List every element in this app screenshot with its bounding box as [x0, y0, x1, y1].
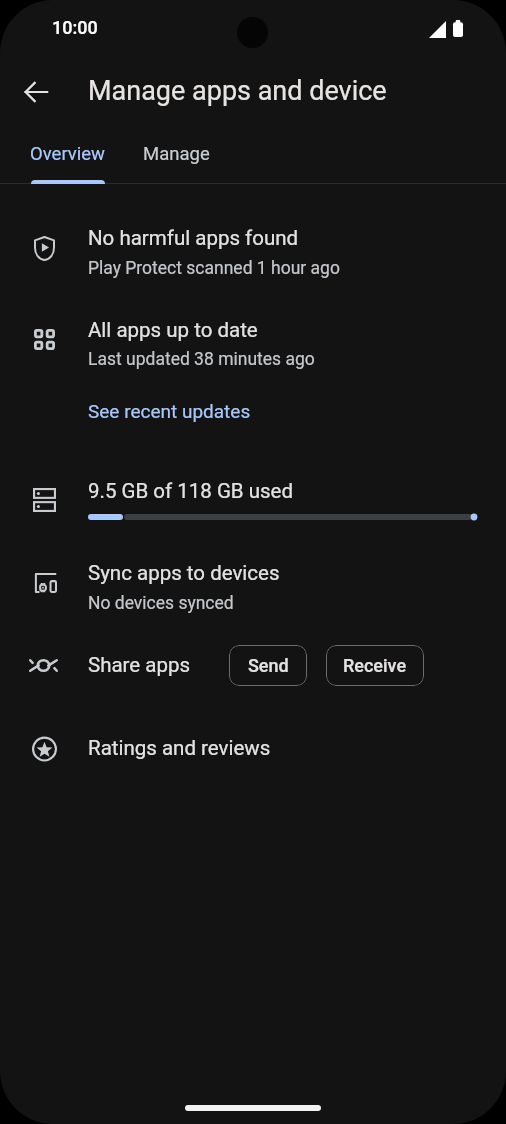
staticText: Manage apps and device [88, 75, 387, 107]
button[interactable]: 9.5 GB of 118 GB used [0, 465, 506, 531]
staticText: Sync apps to devices [88, 561, 280, 585]
staticText: Send [248, 655, 289, 676]
staticText: No harmful apps found [88, 226, 299, 250]
staticText: Ratings and reviews [88, 736, 271, 760]
staticText: See recent updates [88, 400, 251, 422]
button[interactable]: Receive [326, 645, 424, 686]
button[interactable]: Sync apps to devices [0, 551, 506, 615]
button[interactable]: No harmful apps found [0, 216, 506, 280]
staticText: Last updated 38 minutes ago [88, 349, 315, 370]
staticText: No devices synced [88, 593, 234, 614]
staticText: All apps up to date [88, 318, 258, 342]
button[interactable]: Overview [12, 128, 123, 183]
staticText: Receive [343, 655, 407, 676]
staticText: 9.5 GB of 118 GB used [88, 479, 294, 503]
staticText: Overview [30, 143, 105, 165]
staticText: Manage [143, 143, 210, 165]
button[interactable]: Share apps [0, 633, 215, 697]
button[interactable]: All apps up to date [0, 308, 506, 372]
button[interactable]: See recent updates [80, 396, 259, 426]
staticText: Share apps [88, 653, 191, 677]
button[interactable]: Send [229, 645, 307, 686]
staticText: Play Protect scanned 1 hour ago [88, 258, 340, 279]
button[interactable]: Back [12, 68, 60, 116]
button[interactable]: Manage [123, 128, 230, 183]
staticText: 10:00 [52, 17, 98, 38]
button[interactable]: Ratings and reviews [0, 716, 506, 780]
